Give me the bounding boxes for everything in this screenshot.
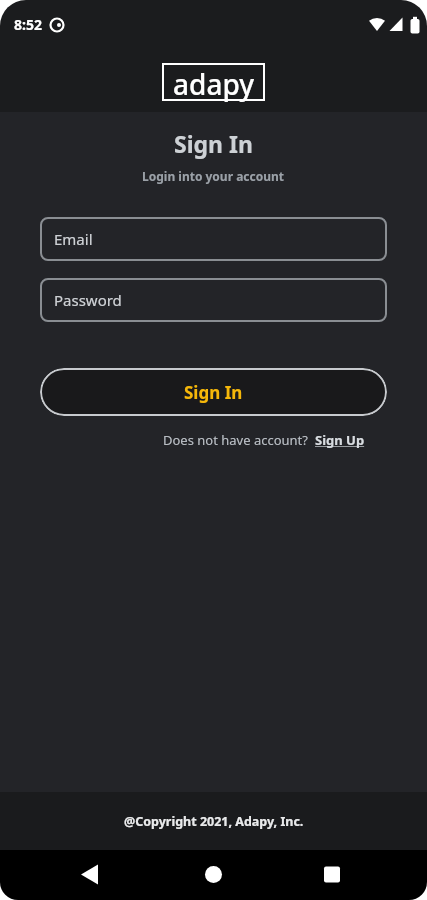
button[interactable]: [285, 850, 427, 900]
staticText: Sign In: [184, 381, 243, 404]
button[interactable]: [143, 850, 285, 900]
staticText: 8:52: [14, 15, 42, 34]
button[interactable]: [0, 850, 143, 900]
staticText: Does not have account?: [163, 431, 315, 449]
staticText: Sign Up: [315, 431, 365, 449]
staticText: @Copyright 2021, Adapy, Inc.: [124, 813, 304, 830]
button[interactable]: Password: [40, 278, 387, 322]
staticText: Sign In: [174, 128, 253, 159]
staticText: Password: [54, 290, 122, 310]
staticText: adapy: [173, 65, 254, 103]
button[interactable]: Email: [40, 217, 387, 261]
staticText: Login into your account: [142, 168, 285, 184]
button[interactable]: Sign Up: [315, 431, 365, 449]
button[interactable]: Sign In: [40, 368, 387, 416]
staticText: Email: [54, 229, 93, 249]
